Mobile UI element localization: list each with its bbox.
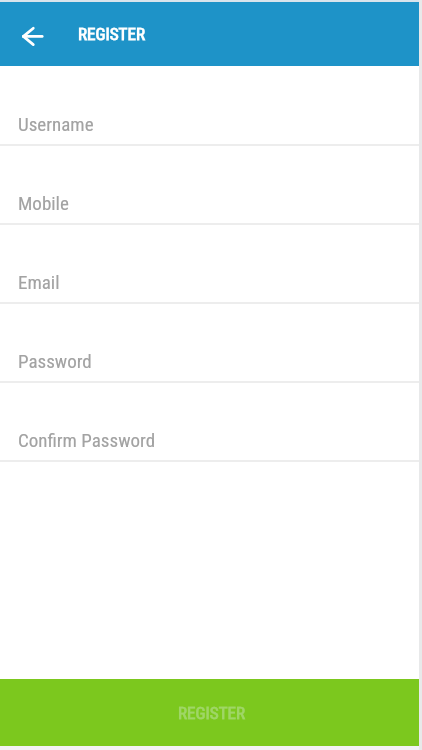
- staticText: REGISTER: [178, 703, 245, 723]
- staticText: Username: [18, 113, 94, 135]
- button[interactable]: Back: [10, 14, 54, 58]
- staticText: Confirm Password: [18, 429, 156, 451]
- button[interactable]: Mobile: [0, 145, 422, 224]
- button[interactable]: Email: [0, 224, 422, 303]
- button[interactable]: Confirm Password: [0, 382, 422, 461]
- staticText: Password: [18, 350, 92, 372]
- button[interactable]: Username: [0, 66, 422, 145]
- button[interactable]: Password: [0, 303, 422, 382]
- staticText: REGISTER: [78, 24, 145, 44]
- staticText: Mobile: [18, 192, 69, 214]
- staticText: Email: [18, 271, 60, 293]
- button[interactable]: REGISTER: [0, 679, 422, 746]
